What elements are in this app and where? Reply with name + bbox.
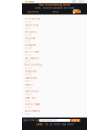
button[interactable]: legal (62, 123, 65, 126)
staticText: 214 pts (25, 21, 32, 23)
button[interactable]: faq (45, 123, 48, 126)
staticText: security (53, 123, 60, 126)
staticText: 94 pts (25, 113, 31, 115)
button[interactable]: ten lessons (25, 57, 86, 63)
staticText: netbooks (25, 76, 37, 80)
staticText: newsly (25, 0, 35, 3)
button[interactable]: top stories (27, 10, 38, 13)
staticText: docs (72, 0, 76, 3)
staticText: stay in the loop (23, 119, 39, 122)
staticText: tiny renderer (25, 17, 41, 20)
staticText: legal (62, 123, 65, 126)
button[interactable]: compilers (25, 70, 86, 76)
staticText: the everything feed (39, 3, 70, 7)
staticText: 88 pts (25, 80, 31, 82)
staticText: contact (67, 123, 74, 126)
staticText: ode to make (25, 103, 40, 106)
staticText: font hinting (25, 63, 43, 66)
button[interactable]: font hinting (25, 63, 86, 70)
staticText: deep sea (25, 96, 36, 99)
staticText: 203 pts (25, 93, 32, 96)
staticText: the pixel (25, 37, 36, 40)
button[interactable]: log in (78, 0, 84, 3)
button[interactable]: contact (67, 123, 74, 126)
staticText: 57 pts (25, 40, 31, 43)
button[interactable]: ode to make (25, 103, 86, 109)
staticText: sign up (72, 119, 79, 122)
staticText: 117 pts (25, 106, 32, 109)
button[interactable]: security (53, 123, 60, 126)
staticText: 265 pts (25, 73, 32, 76)
button[interactable]: subscribe (72, 10, 81, 13)
staticText: log in (78, 0, 84, 3)
button[interactable]: api (50, 123, 52, 126)
button[interactable]: rise of rust (25, 24, 86, 30)
staticText: best tools? (25, 90, 39, 93)
button[interactable]: docs (72, 0, 76, 3)
button[interactable]: postgres (25, 43, 86, 50)
staticText: subscribe (73, 9, 81, 15)
staticText: slow rewrite (25, 109, 40, 113)
staticText: you@example.com (40, 119, 57, 122)
button[interactable]: tiny renderer (25, 17, 86, 24)
button[interactable]: newest (52, 10, 59, 13)
button[interactable]: deep sea (25, 96, 86, 103)
button[interactable]: best tools? (25, 90, 86, 96)
button[interactable]: netbooks (25, 76, 86, 83)
staticText: rise of rust (25, 24, 39, 27)
staticText: top stories (27, 10, 38, 13)
staticText: faq (45, 123, 48, 126)
staticText: 154 pts (25, 87, 32, 89)
staticText: 441 pts (25, 47, 32, 49)
button[interactable]: the pixel (25, 37, 86, 43)
button[interactable]: sign up (70, 119, 80, 122)
staticText: 98 pts (25, 27, 31, 30)
staticText: ten lessons (25, 57, 39, 60)
staticText: guidelines (36, 123, 43, 126)
staticText: wasm rt (25, 83, 34, 86)
staticText: postgres (25, 43, 36, 47)
button[interactable]: slow rewrite (25, 109, 86, 116)
button[interactable]: cpu in excel (25, 50, 86, 57)
staticText: cpu in excel (25, 50, 40, 53)
staticText: newest (52, 10, 59, 13)
staticText: 312 pts (25, 34, 32, 36)
staticText: 61 pts (25, 100, 31, 102)
staticText: why crdts (25, 30, 37, 33)
staticText: 183 pts (25, 67, 32, 69)
staticText: 76 pts (25, 60, 31, 63)
staticText: api (50, 123, 52, 126)
button[interactable]: wasm rt (25, 83, 86, 90)
staticText: stories, comments and jobs in one stream (34, 7, 74, 9)
button[interactable]: newsly (25, 0, 35, 3)
staticText: 129 pts (25, 54, 32, 56)
button[interactable]: guidelines (36, 123, 43, 126)
button[interactable]: why crdts (25, 30, 86, 37)
staticText: compilers (25, 70, 37, 73)
